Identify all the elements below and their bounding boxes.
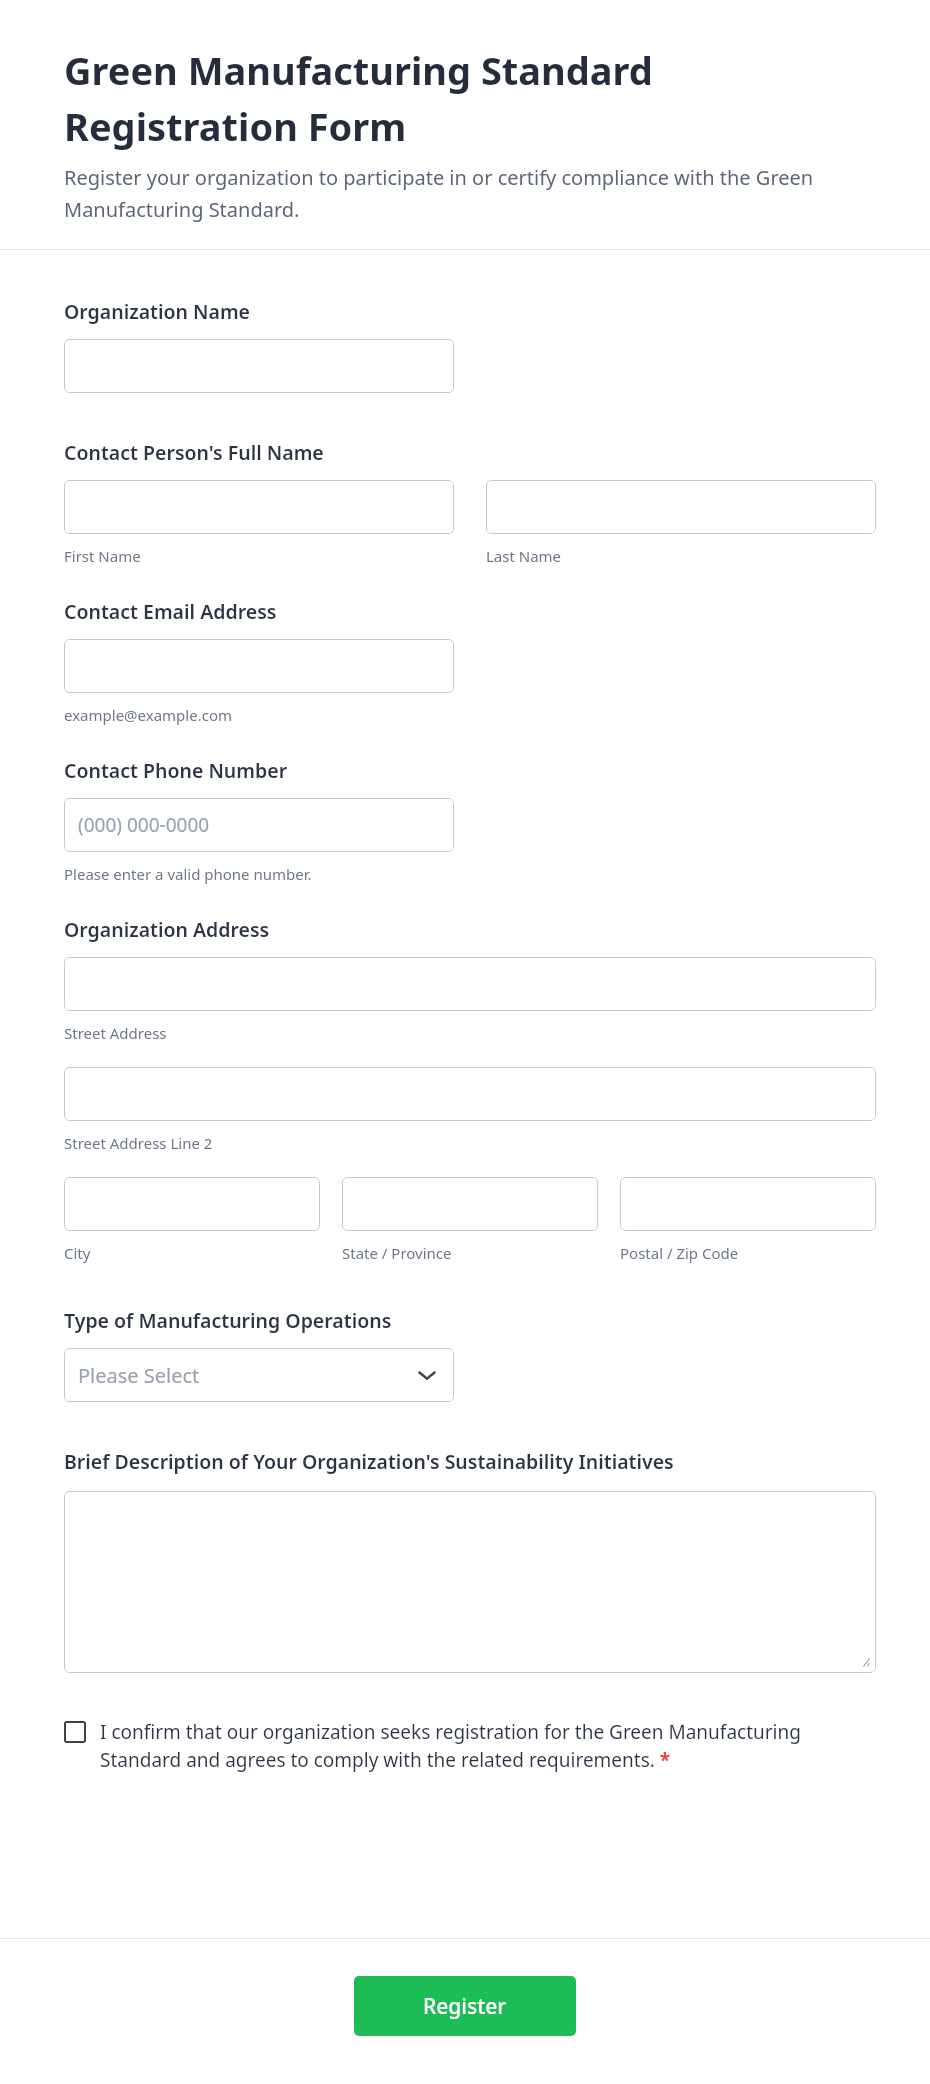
staticText: Last Name bbox=[486, 546, 562, 566]
button[interactable]: State / Province bbox=[342, 1177, 598, 1231]
staticText: Organization Address bbox=[64, 916, 270, 943]
button[interactable]: First Name bbox=[64, 480, 454, 534]
button[interactable]: Street Address Line 2 bbox=[64, 1067, 876, 1121]
button[interactable]: Last Name bbox=[486, 480, 876, 534]
button[interactable]: Contact Phone Number bbox=[64, 798, 454, 852]
staticText: Please enter a valid phone number. bbox=[64, 864, 312, 884]
staticText: Postal / Zip Code bbox=[620, 1243, 739, 1263]
button[interactable]: Type of Manufacturing Operations bbox=[64, 1348, 454, 1402]
staticText: example@example.com bbox=[64, 705, 232, 725]
staticText: Contact Person's Full Name bbox=[64, 439, 324, 466]
button[interactable]: Organization Name bbox=[64, 339, 454, 393]
staticText: Register bbox=[423, 1992, 507, 2021]
button[interactable]: Postal / Zip Code bbox=[620, 1177, 876, 1231]
staticText: City bbox=[64, 1243, 91, 1263]
button[interactable]: I confirm that our organization seeks re… bbox=[64, 1717, 876, 1773]
staticText: First Name bbox=[64, 546, 141, 566]
staticText: Type of Manufacturing Operations bbox=[64, 1307, 392, 1334]
staticText: (000) 000-0000 bbox=[78, 812, 210, 838]
staticText: Organization Name bbox=[64, 298, 251, 325]
staticText: Brief Description of Your Organization's… bbox=[64, 1448, 674, 1475]
staticText: Contact Email Address bbox=[64, 598, 277, 625]
staticText: I confirm that our organization seeks re… bbox=[100, 1717, 876, 1773]
staticText: Please Select bbox=[78, 1362, 200, 1389]
button[interactable]: Contact Email Address bbox=[64, 639, 454, 693]
staticText: State / Province bbox=[342, 1243, 452, 1263]
staticText: Register your organization to participat… bbox=[64, 164, 866, 223]
staticText: Contact Phone Number bbox=[64, 757, 288, 784]
button[interactable]: Brief Description of Your Organization's… bbox=[64, 1491, 876, 1673]
staticText: Green Manufacturing Standard Registratio… bbox=[64, 44, 866, 152]
staticText: Street Address Line 2 bbox=[64, 1133, 213, 1153]
button[interactable]: City bbox=[64, 1177, 320, 1231]
button[interactable]: Street Address bbox=[64, 957, 876, 1011]
staticText: Street Address bbox=[64, 1023, 167, 1043]
button[interactable]: Register bbox=[354, 1976, 576, 2036]
